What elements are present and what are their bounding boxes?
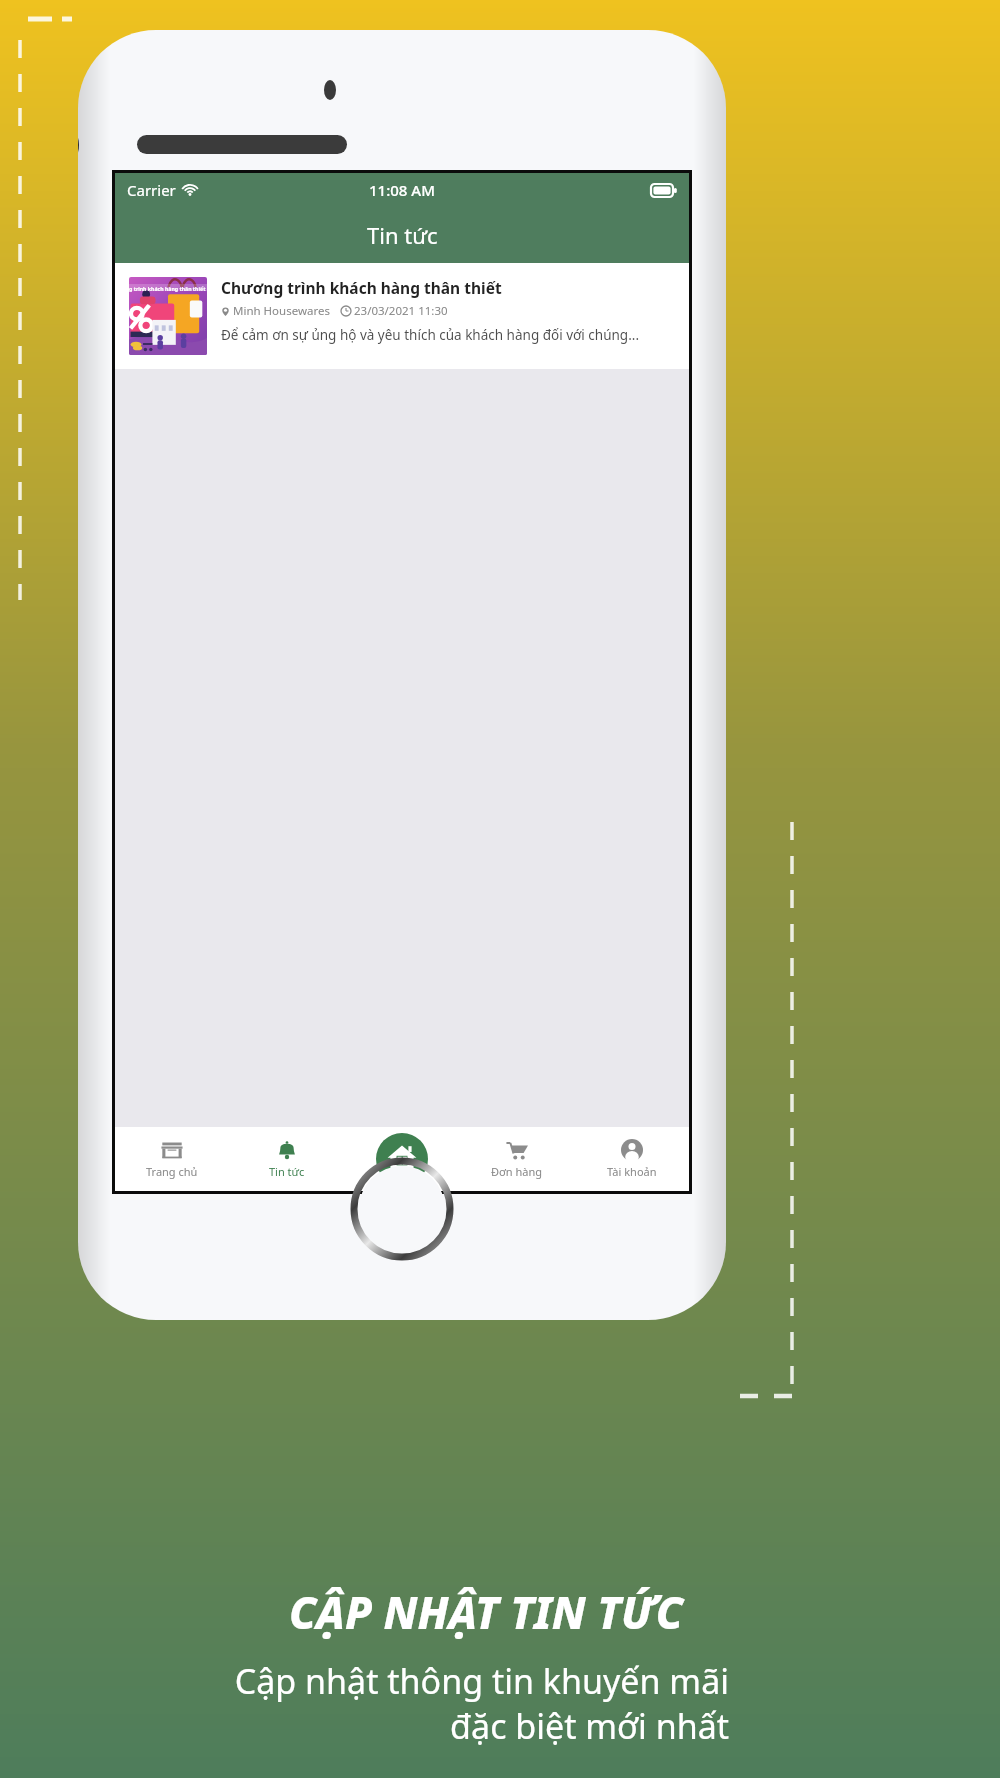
staticText: Đơn hàng [491, 1164, 542, 1179]
button[interactable]: Tin tức [229, 1127, 344, 1191]
staticText: g trình khách hàng thân thiết [129, 285, 206, 292]
staticText: Chương trình khách hàng thân thiết [221, 277, 502, 298]
staticText: Tài khoản [607, 1164, 657, 1179]
staticText: Để cảm ơn sự ủng hộ và yêu thích của khá… [221, 326, 640, 344]
staticText: 23/03/2021 11:30 [354, 303, 448, 319]
button[interactable]: Tài khoản [574, 1127, 689, 1191]
staticText: Minh Housewares [233, 303, 330, 319]
staticText: Trang chủ [146, 1164, 198, 1179]
staticText: Tin tức [367, 220, 438, 250]
staticText: Tin tức [269, 1164, 305, 1179]
button[interactable]: Trang chính [376, 1133, 428, 1185]
staticText: Carrier [127, 180, 176, 200]
button[interactable]: g trình khách hàng thân thiết [115, 263, 689, 369]
button[interactable]: Đơn hàng [459, 1127, 574, 1191]
staticText: 11:08 AM [369, 180, 435, 200]
staticText: CẬP NHẬT TIN TỨC [289, 1582, 684, 1642]
button[interactable]: Trang chủ [115, 1127, 229, 1191]
staticText: Cập nhật thông tin khuyến mãi đặc biệt m… [234, 1658, 729, 1748]
